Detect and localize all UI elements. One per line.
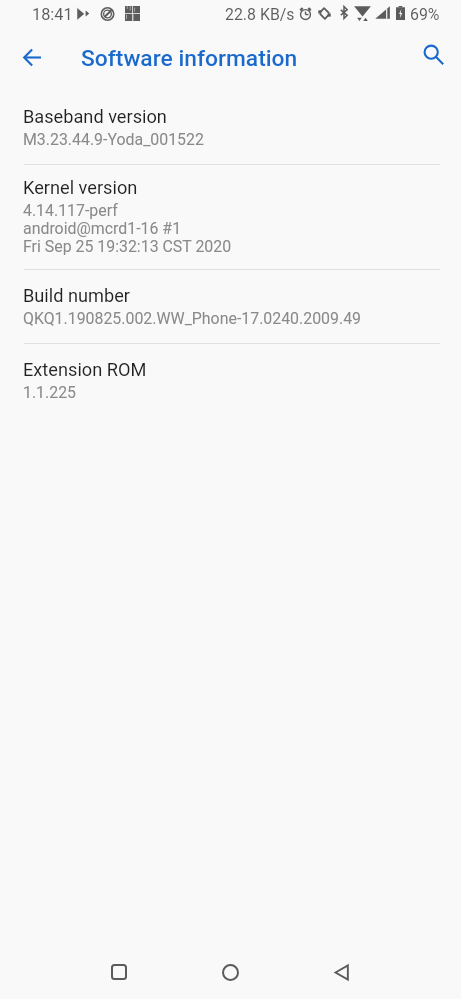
button[interactable]: Search [413, 34, 455, 76]
staticText: Kernel version [23, 177, 138, 198]
staticText: Baseband version [23, 106, 167, 127]
button[interactable]: Kernel version [0, 164, 461, 270]
staticText: 18:41 [32, 5, 73, 24]
button[interactable]: Recent apps [93, 946, 145, 998]
button[interactable]: Extension ROM [0, 346, 461, 417]
staticText: 1.1.225 [23, 384, 77, 402]
button[interactable]: Baseband version [0, 93, 461, 164]
button[interactable]: Navigate back [11, 36, 53, 78]
staticText: Build number [23, 285, 131, 306]
button[interactable]: Back [315, 946, 367, 998]
staticText: Extension ROM [23, 359, 147, 380]
button[interactable]: Home [204, 946, 256, 998]
staticText: M3.23.44.9-Yoda_001522 [23, 131, 204, 149]
staticText: QKQ1.190825.002.WW_Phone-17.0240.2009.49 [23, 310, 362, 328]
button[interactable]: Build number [0, 272, 461, 343]
staticText: 69% [410, 5, 440, 24]
staticText: 22.8 KB/s [225, 5, 295, 24]
staticText: 4.14.117-perf android@mcrd1-16 #1 Fri Se… [23, 202, 232, 256]
staticText: Software information [81, 45, 298, 72]
